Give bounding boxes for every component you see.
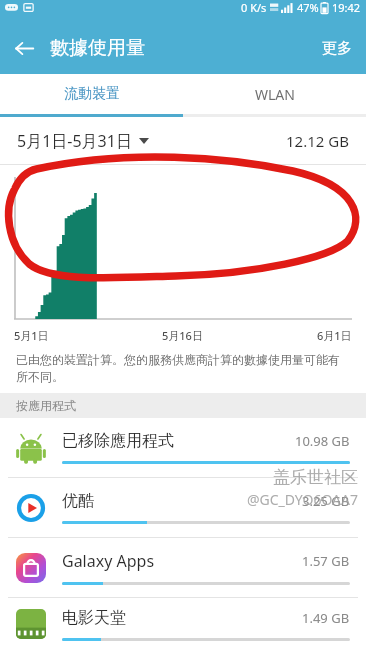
staticText: @GC_DYO6OAA7 — [246, 490, 358, 509]
button[interactable]: 电影天堂 — [0, 598, 366, 650]
staticText: 优酷 — [62, 491, 302, 511]
staticText: 10.98 GB — [295, 432, 350, 450]
staticText: Galaxy Apps — [62, 550, 302, 572]
button[interactable]: Galaxy Apps — [0, 538, 366, 597]
staticText: 流動裝置 — [64, 85, 120, 103]
staticText: WLAN — [255, 85, 295, 104]
staticText: 0 K/s — [241, 0, 267, 15]
button[interactable]: 流動裝置 — [0, 74, 183, 114]
button[interactable]: 已移除應用程式 — [0, 418, 366, 477]
staticText: 盖乐世社区 — [273, 467, 358, 488]
staticText: 5月1日 — [14, 328, 49, 343]
staticText: 1.49 GB — [302, 609, 350, 627]
staticText: 數據使用量 — [50, 36, 145, 60]
staticText: 47% — [297, 0, 319, 15]
staticText: 3.25 GB — [302, 492, 350, 510]
staticText: 19:42 — [332, 0, 361, 15]
button[interactable]: 5月1日-5月31日 — [17, 130, 149, 152]
staticText: 5月1日-5月31日 — [17, 130, 132, 152]
staticText: 已由您的裝置計算。您的服務供應商計算的數據使用量可能有所不同。 — [16, 352, 350, 384]
button[interactable]: Back — [0, 24, 48, 72]
staticText: 更多 — [322, 39, 352, 58]
staticText: 电影天堂 — [62, 608, 302, 628]
staticText: 6月1日 — [317, 328, 352, 343]
button[interactable]: WLAN — [183, 74, 366, 114]
staticText: 1.57 GB — [302, 552, 350, 570]
staticText: 已移除應用程式 — [62, 431, 295, 451]
staticText: 12.12 GB — [286, 131, 349, 151]
staticText: 5月16日 — [162, 328, 203, 343]
button[interactable]: 优酷 — [0, 478, 366, 537]
button[interactable]: 更多 — [308, 29, 366, 68]
staticText: 按應用程式 — [16, 398, 76, 413]
